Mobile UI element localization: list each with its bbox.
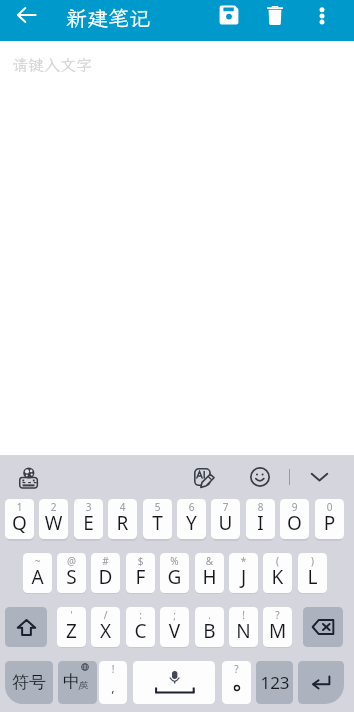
staticText: H	[195, 564, 224, 590]
staticText: ,	[99, 678, 127, 696]
staticText: Y	[177, 510, 206, 536]
staticText: R	[108, 510, 137, 536]
button[interactable]: 符号	[5, 661, 53, 704]
button[interactable]: AI writing	[189, 462, 219, 492]
staticText: ?	[263, 608, 292, 622]
staticText: 5	[143, 500, 172, 514]
staticText: N	[229, 618, 258, 644]
staticText: T	[143, 510, 172, 536]
staticText: :	[126, 608, 155, 622]
staticText: @	[57, 554, 86, 568]
button[interactable]: ?	[263, 607, 292, 647]
staticText: .	[195, 608, 224, 622]
button[interactable]: Back	[8, 0, 44, 33]
staticText: ~	[23, 554, 52, 568]
staticText: #	[91, 554, 120, 568]
staticText: I	[246, 510, 275, 536]
staticText: 1	[5, 500, 34, 514]
button[interactable]: )	[298, 553, 327, 593]
button[interactable]: !	[229, 607, 258, 647]
staticText: 英	[80, 680, 89, 691]
button[interactable]: @	[57, 553, 86, 593]
button[interactable]: 2	[39, 499, 68, 539]
staticText: !	[229, 608, 258, 622]
button[interactable]: Shift	[5, 607, 47, 647]
staticText: 0	[315, 500, 344, 514]
button[interactable]: More options	[304, 0, 340, 33]
staticText: &	[195, 554, 224, 568]
staticText: ?	[222, 662, 251, 676]
button[interactable]: (	[263, 553, 292, 593]
button[interactable]: ~	[23, 553, 52, 593]
staticText: D	[91, 564, 120, 590]
button[interactable]: '	[57, 607, 86, 647]
staticText: W	[39, 510, 68, 536]
staticText: V	[160, 618, 189, 644]
staticText: '	[57, 608, 86, 622]
button[interactable]: #	[91, 553, 120, 593]
staticText: G	[160, 564, 189, 590]
staticText: %	[160, 554, 189, 568]
staticText: 2	[39, 500, 68, 514]
button[interactable]: ?	[222, 661, 251, 704]
button[interactable]: %	[160, 553, 189, 593]
staticText: S	[57, 564, 86, 590]
button[interactable]: 3	[74, 499, 103, 539]
staticText: U	[211, 510, 240, 536]
staticText: B	[195, 618, 224, 644]
staticText: O	[280, 510, 309, 536]
button[interactable]: Switch input method	[13, 460, 44, 491]
button[interactable]: 5	[143, 499, 172, 539]
button[interactable]: &	[195, 553, 224, 593]
button[interactable]: Enter	[298, 661, 344, 704]
staticText: K	[263, 564, 292, 590]
button[interactable]: :	[126, 607, 155, 647]
button[interactable]: 6	[177, 499, 206, 539]
button[interactable]: /	[91, 607, 120, 647]
button[interactable]: 123	[256, 661, 293, 704]
staticText: A	[23, 564, 52, 590]
staticText: /	[91, 608, 120, 622]
button[interactable]: Hide keyboard	[304, 462, 334, 492]
staticText: 新建笔记	[66, 4, 150, 32]
button[interactable]: Delete	[257, 0, 293, 33]
staticText: Z	[57, 618, 86, 644]
button[interactable]: 8	[246, 499, 275, 539]
staticText: 7	[211, 500, 240, 514]
staticText: (	[263, 554, 292, 568]
staticText: 8	[246, 500, 275, 514]
button[interactable]: ;	[160, 607, 189, 647]
staticText: F	[126, 564, 155, 590]
staticText: L	[298, 564, 327, 590]
staticText: C	[126, 618, 155, 644]
staticText: Q	[5, 510, 34, 536]
staticText: J	[229, 564, 258, 590]
button[interactable]: 4	[108, 499, 137, 539]
button[interactable]: *	[229, 553, 258, 593]
staticText: *	[229, 554, 258, 568]
staticText: 9	[280, 500, 309, 514]
button[interactable]: !	[99, 661, 127, 704]
button[interactable]: 中	[58, 661, 97, 704]
button[interactable]: .	[195, 607, 224, 647]
staticText: 符号	[12, 672, 46, 693]
button[interactable]: $	[126, 553, 155, 593]
staticText: P	[315, 510, 344, 536]
staticText: 中	[63, 671, 80, 692]
button[interactable]: Emoji	[245, 462, 275, 492]
staticText: E	[74, 510, 103, 536]
button[interactable]: 0	[315, 499, 344, 539]
staticText: M	[263, 618, 292, 644]
button[interactable]: 7	[211, 499, 240, 539]
staticText: /	[78, 679, 82, 693]
button[interactable]: Space	[133, 661, 215, 704]
staticText: $	[126, 554, 155, 568]
button[interactable]: Backspace	[303, 607, 343, 647]
staticText: 123	[260, 671, 290, 694]
button[interactable]: Save	[211, 0, 247, 33]
staticText: ;	[160, 608, 189, 622]
staticText: X	[91, 618, 120, 644]
staticText: 4	[108, 500, 137, 514]
button[interactable]: 1	[5, 499, 34, 539]
button[interactable]: 9	[280, 499, 309, 539]
